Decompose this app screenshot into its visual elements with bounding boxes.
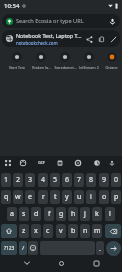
button[interactable]: v [56,224,66,238]
staticText: 4 [41,175,46,185]
button[interactable]: 7 [74,173,84,187]
staticText: k [95,209,99,219]
staticText: 9 [102,175,107,185]
staticText: h [71,209,76,219]
button[interactable]: ?123 [1,241,17,255]
button[interactable]: Backspace [105,224,121,238]
staticText: u [77,192,82,202]
button[interactable]: j [80,207,90,221]
button[interactable]: p [111,190,121,204]
button[interactable]: Theme [91,157,103,169]
staticText: g [59,209,64,219]
button[interactable]: x [31,224,41,238]
button[interactable]: Octane [101,52,122,69]
staticText: n [83,226,88,236]
button[interactable]: Voice search [107,16,118,27]
button[interactable]: Start Test [5,52,29,69]
button[interactable]: y [62,190,72,204]
button[interactable]: 9 [99,173,109,187]
staticText: q [4,192,9,202]
button[interactable]: Emoji [28,241,38,255]
button[interactable]: b [68,224,78,238]
staticText: x [34,226,38,236]
button[interactable]: i [86,190,96,204]
button[interactable]: u [74,190,84,204]
button[interactable]: 5 [50,173,60,187]
button[interactable]: 1 [1,173,11,187]
button[interactable]: Enter [106,241,121,256]
button[interactable]: . [96,241,104,255]
button[interactable]: f [44,207,54,221]
staticText: m [94,226,101,236]
staticText: 8 [89,175,94,185]
staticText: 6 [65,175,70,185]
button[interactable]: 2 [13,173,23,187]
button[interactable]: o [99,190,109,204]
button[interactable]: Shift [1,224,17,238]
staticText: c [46,226,50,236]
button[interactable]: l [105,207,115,221]
button[interactable]: k [92,207,102,221]
staticText: o [102,192,107,202]
staticText: z [22,226,26,236]
button[interactable]: s [19,207,29,221]
button[interactable]: / [19,241,27,255]
button[interactable]: z [19,224,29,238]
staticText: w [15,192,21,202]
button[interactable]: Stickers [17,157,29,169]
button[interactable]: Kraken Ja… [29,52,53,69]
button[interactable]: a [7,207,17,221]
button[interactable]: g [56,207,66,221]
staticText: d [34,209,39,219]
button[interactable]: c [43,224,53,238]
button[interactable]: Clipboard [54,157,66,169]
staticText: Start Test [9,65,25,69]
button[interactable]: Speedomet… [53,52,77,69]
staticText: e [28,192,32,202]
staticText: 1 [4,175,9,185]
staticText: / [22,244,25,252]
button[interactable]: Notebook Test, Laptop T… [2,30,120,47]
button[interactable]: t [50,190,60,204]
staticText: j [84,209,86,219]
button[interactable]: Voice input [106,157,118,169]
button[interactable]: Edit [107,33,119,45]
staticText: p [114,192,119,202]
staticText: notebookcheck.com [16,40,58,46]
staticText: Kraken Ja… [32,65,51,69]
button[interactable]: w [13,190,23,204]
button[interactable]: Search Ecosia or type URL [2,14,120,28]
staticText: 0 [114,175,119,185]
button[interactable]: Copy [95,33,107,45]
button[interactable]: Apps [2,157,14,169]
staticText: Search Ecosia or type URL [16,17,84,25]
button[interactable]: q [1,190,11,204]
button[interactable]: 4 [38,173,48,187]
button[interactable]: e [25,190,35,204]
staticText: 7 [77,175,82,185]
button[interactable]: Share [83,33,95,45]
button[interactable]: Home [53,255,69,271]
button[interactable]: m [92,224,102,238]
button[interactable]: h [68,207,78,221]
staticText: t [54,192,57,202]
staticText: r [42,192,45,202]
button[interactable]: 0 [111,173,121,187]
button[interactable]: JetStream 2 [77,52,101,69]
staticText: Speedomet… [54,65,77,69]
button[interactable]: Settings [72,157,84,169]
staticText: y [65,192,69,202]
button[interactable]: Hide keyboard [19,255,35,271]
button[interactable]: 8 [86,173,96,187]
staticText: 10:54 [4,2,20,10]
button[interactable]: n [80,224,90,238]
button[interactable]: GIF [35,157,47,169]
button[interactable]: r [38,190,48,204]
staticText: b [71,226,76,236]
button[interactable]: 3 [25,173,35,187]
staticText: f [48,209,51,219]
button[interactable]: 6 [62,173,72,187]
button[interactable]: d [31,207,41,221]
button[interactable]: Recent apps [88,255,104,271]
